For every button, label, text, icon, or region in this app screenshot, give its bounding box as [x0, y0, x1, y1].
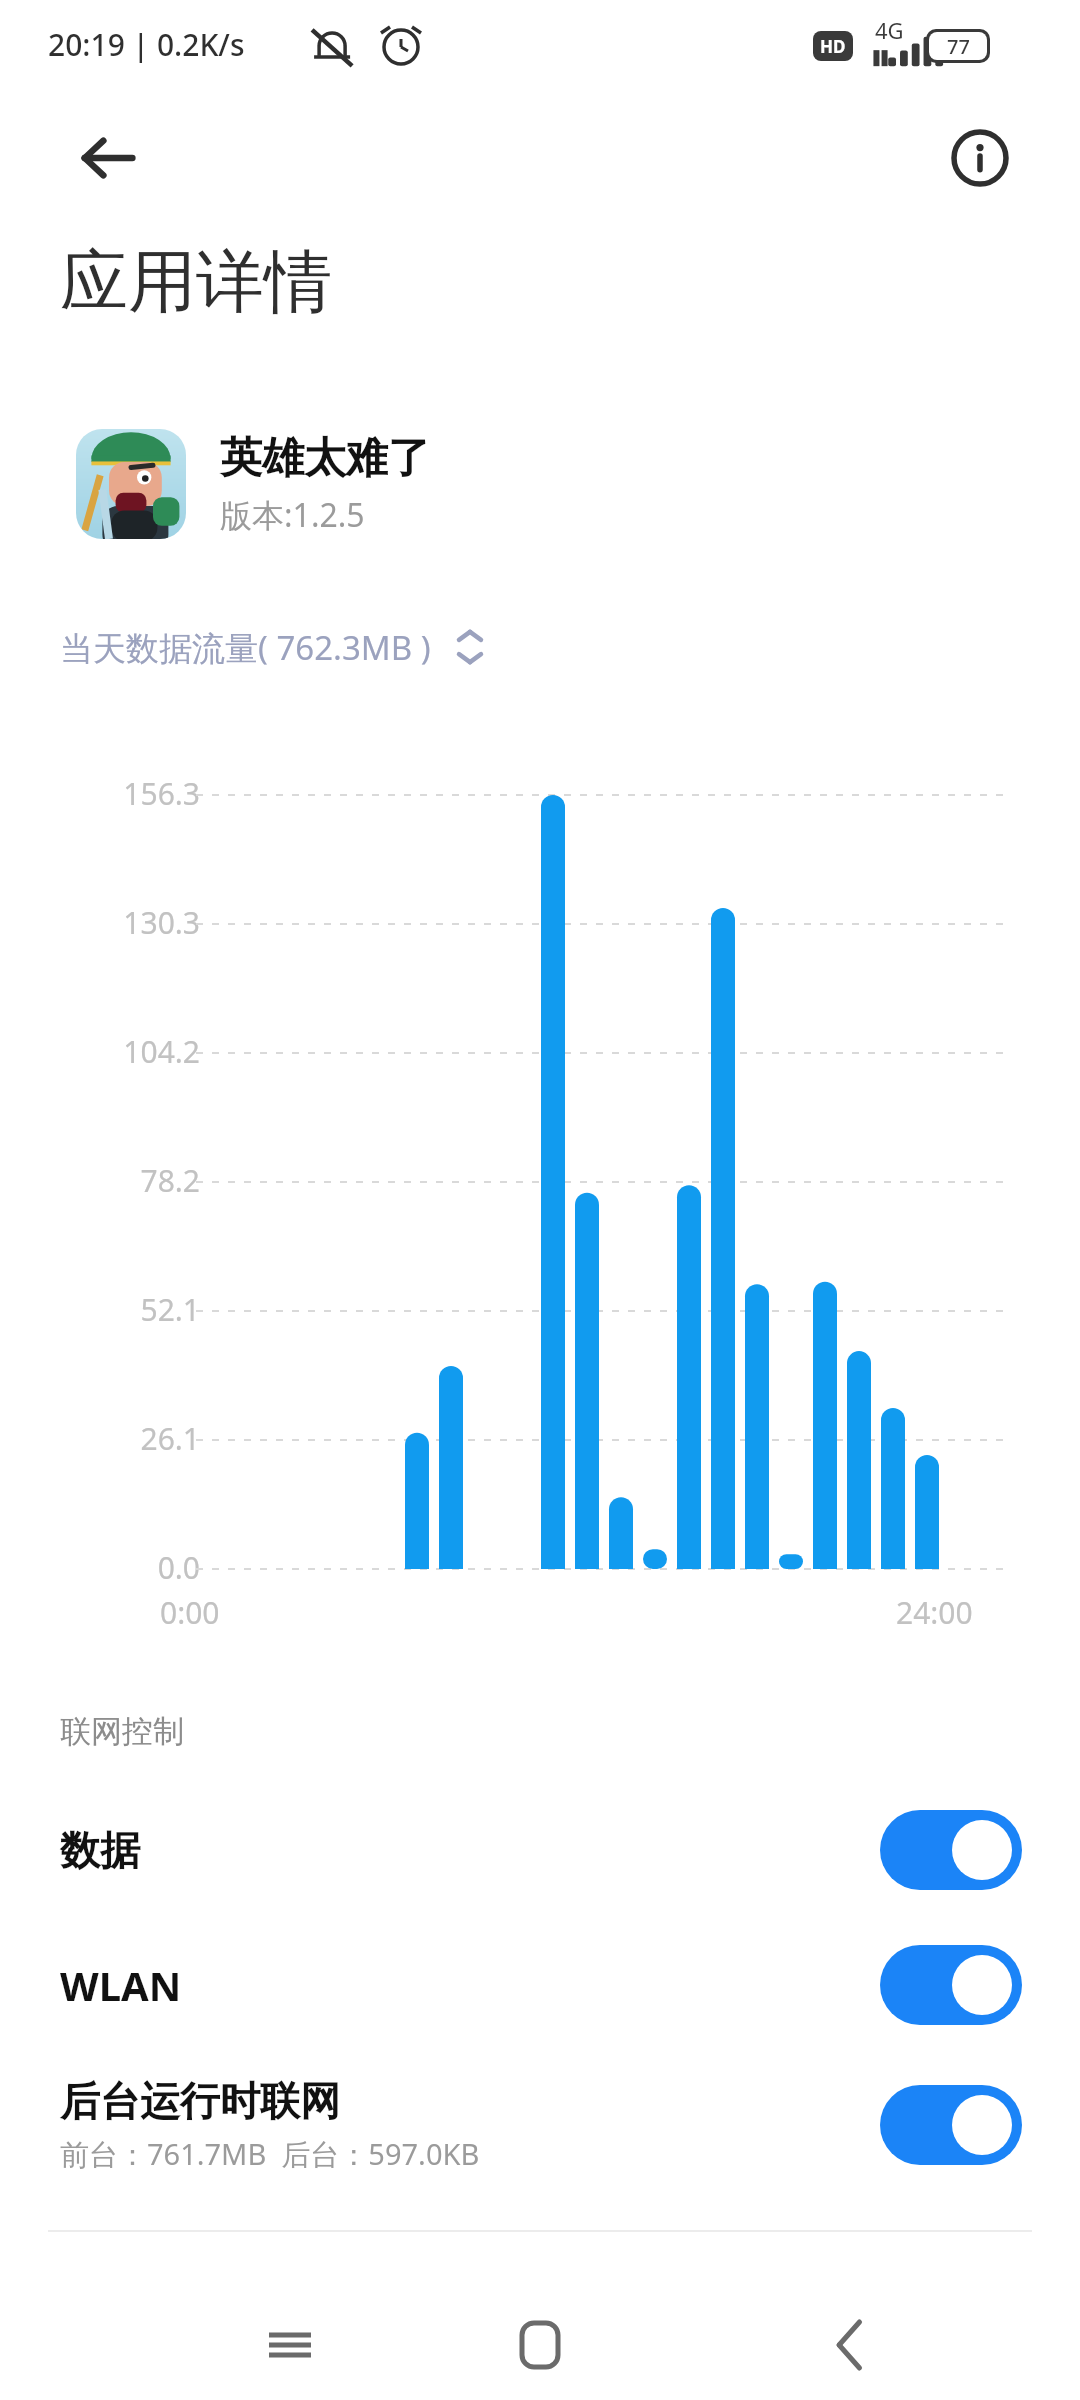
staticText: 版本:1.2.5 [220, 493, 365, 537]
staticText: 当天数据流量( 762.3MB ) [60, 625, 431, 670]
staticText: 20:19 | 0.2K/s [48, 24, 245, 65]
staticText: WLAN [60, 1958, 182, 2012]
staticText: 130.3 [0, 902, 200, 943]
staticText: 数据 [60, 1825, 140, 1875]
staticText: 应用详情 [60, 240, 332, 326]
staticText: 4G [875, 15, 904, 45]
button[interactable]: 主页 [480, 2290, 600, 2400]
button[interactable]: 信息 [932, 110, 1028, 206]
button[interactable]: 数据 [0, 1790, 1080, 1910]
staticText: 156.3 [0, 773, 200, 814]
staticText: HD [820, 35, 846, 58]
staticText: 24:00 [896, 1592, 973, 1633]
other: 数据 [880, 1810, 1022, 1890]
button[interactable]: 当天数据流量( 762.3MB ) [60, 614, 487, 680]
staticText: 26.1 [0, 1418, 200, 1459]
staticText: 104.2 [0, 1031, 200, 1072]
staticText: 后台运行时联网 [60, 2076, 340, 2126]
staticText: 0:00 [160, 1592, 220, 1633]
staticText: 联网控制 [60, 1712, 184, 1751]
button[interactable]: 后台运行时联网 [0, 2055, 1080, 2195]
button[interactable]: 最近任务 [230, 2290, 350, 2400]
staticText: 78.2 [0, 1160, 200, 1201]
button[interactable]: 返回 [60, 110, 156, 206]
other: 后台运行时联网 [880, 2085, 1022, 2165]
other: WLAN [880, 1945, 1022, 2025]
staticText: 52.1 [0, 1289, 200, 1330]
staticText: 77 [947, 33, 970, 60]
staticText: 前台：761.7MB 后台：597.0KB [60, 2134, 480, 2174]
staticText: 0.0 [0, 1547, 200, 1588]
button[interactable]: WLAN [0, 1925, 1080, 2045]
button[interactable]: 返回 [790, 2290, 910, 2400]
staticText: 英雄太难了 [220, 432, 430, 485]
